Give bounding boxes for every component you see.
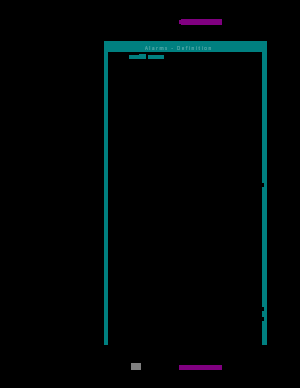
button[interactable]: Navigation bbox=[179, 365, 222, 371]
staticText: Alarms - Definition bbox=[145, 45, 213, 51]
button[interactable]: Alarms - Definition bbox=[104, 41, 267, 52]
button[interactable]: Alarm list header bbox=[129, 54, 164, 61]
button[interactable]: Status indicator bbox=[179, 19, 222, 25]
